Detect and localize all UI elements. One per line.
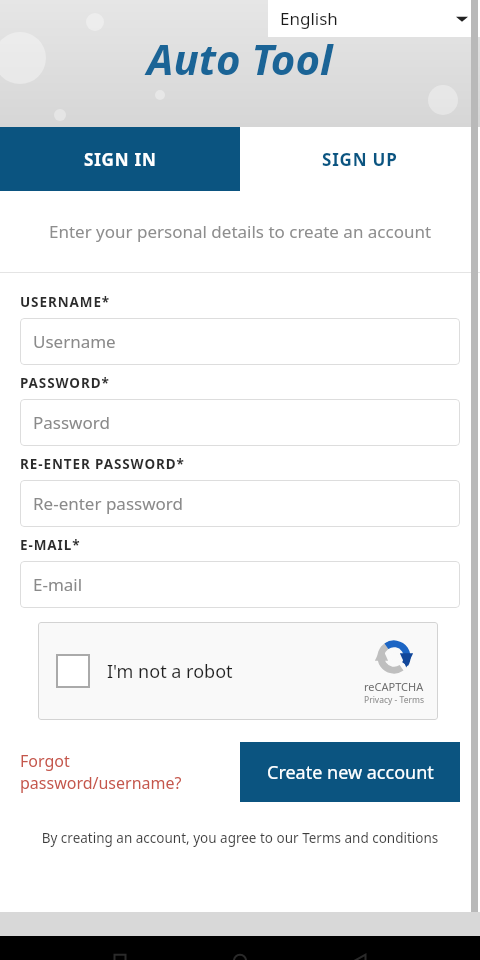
- staticText: PASSWORD*: [20, 374, 110, 392]
- staticText: reCAPTCHA: [364, 679, 424, 694]
- button[interactable]: Create new account: [240, 742, 460, 802]
- button[interactable]: I'm not a robot checkbox: [38, 622, 438, 720]
- staticText: English: [280, 7, 338, 30]
- staticText: RE-ENTER PASSWORD*: [20, 455, 185, 473]
- staticText: Privacy - Terms: [364, 694, 424, 706]
- button[interactable]: SIGN IN: [0, 127, 240, 191]
- button[interactable]: I'm not a robot checkbox: [56, 654, 90, 688]
- staticText: By creating an account, you agree to our…: [20, 829, 460, 847]
- button[interactable]: E-mail: [20, 561, 460, 608]
- staticText: Create new account: [267, 760, 434, 785]
- button[interactable]: Forgot password/username?: [20, 742, 220, 802]
- button[interactable]: Re-enter password: [20, 480, 460, 527]
- staticText: SIGN IN: [84, 148, 157, 171]
- staticText: Username: [33, 330, 116, 353]
- staticText: SIGN UP: [322, 148, 398, 171]
- button[interactable]: SIGN UP: [240, 127, 480, 191]
- staticText: Auto Tool: [147, 30, 333, 87]
- button[interactable]: Username: [20, 318, 460, 365]
- staticText: USERNAME*: [20, 293, 111, 311]
- staticText: I'm not a robot: [107, 659, 233, 684]
- button[interactable]: English: [268, 0, 480, 37]
- button[interactable]: Password: [20, 399, 460, 446]
- staticText: Re-enter password: [33, 492, 183, 515]
- staticText: Forgot password/username?: [20, 750, 182, 794]
- staticText: Enter your personal details to create an…: [49, 220, 432, 243]
- staticText: E-MAIL*: [20, 536, 81, 554]
- staticText: Password: [33, 411, 110, 434]
- staticText: E-mail: [33, 573, 83, 596]
